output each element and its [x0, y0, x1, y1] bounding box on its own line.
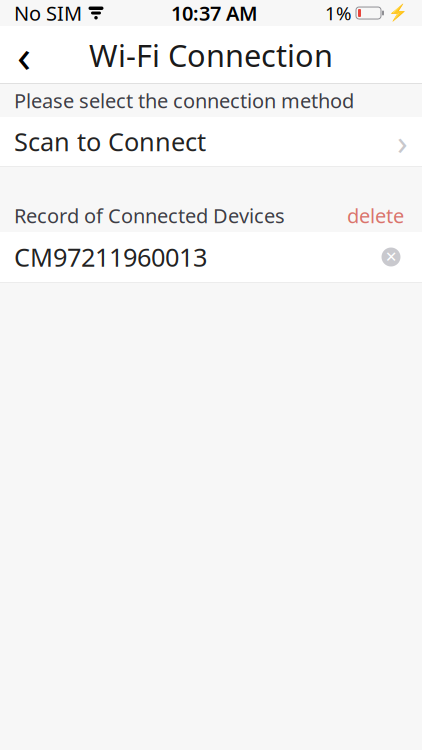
- staticText: ›: [397, 118, 408, 164]
- staticText: No SIM: [14, 0, 82, 26]
- staticText: ✕: [385, 249, 397, 265]
- button[interactable]: Remove device: [374, 240, 408, 274]
- staticText: Wi-Fi Connection: [89, 35, 333, 75]
- staticText: Record of Connected Devices: [14, 202, 285, 229]
- button[interactable]: Back: [0, 26, 48, 84]
- staticText: ⚡: [388, 4, 408, 22]
- staticText: ‹: [17, 25, 31, 85]
- staticText: Scan to Connect: [14, 125, 206, 158]
- button[interactable]: delete: [343, 196, 408, 235]
- staticText: delete: [347, 202, 404, 229]
- staticText: 10:37 AM: [171, 0, 258, 26]
- button[interactable]: Scan to Connect: [0, 117, 422, 166]
- staticText: 1%: [325, 1, 352, 25]
- staticText: Please select the connection method: [14, 87, 354, 114]
- staticText: CM97211960013: [14, 240, 207, 274]
